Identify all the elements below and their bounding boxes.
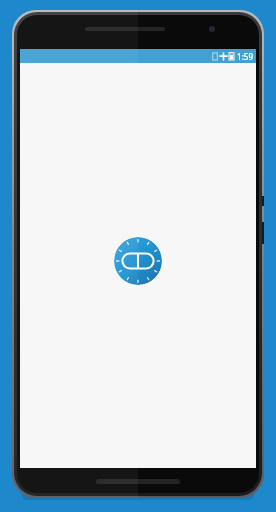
staticText: 1:59 <box>237 51 253 62</box>
button[interactable]: Pill Reminder <box>114 237 162 285</box>
